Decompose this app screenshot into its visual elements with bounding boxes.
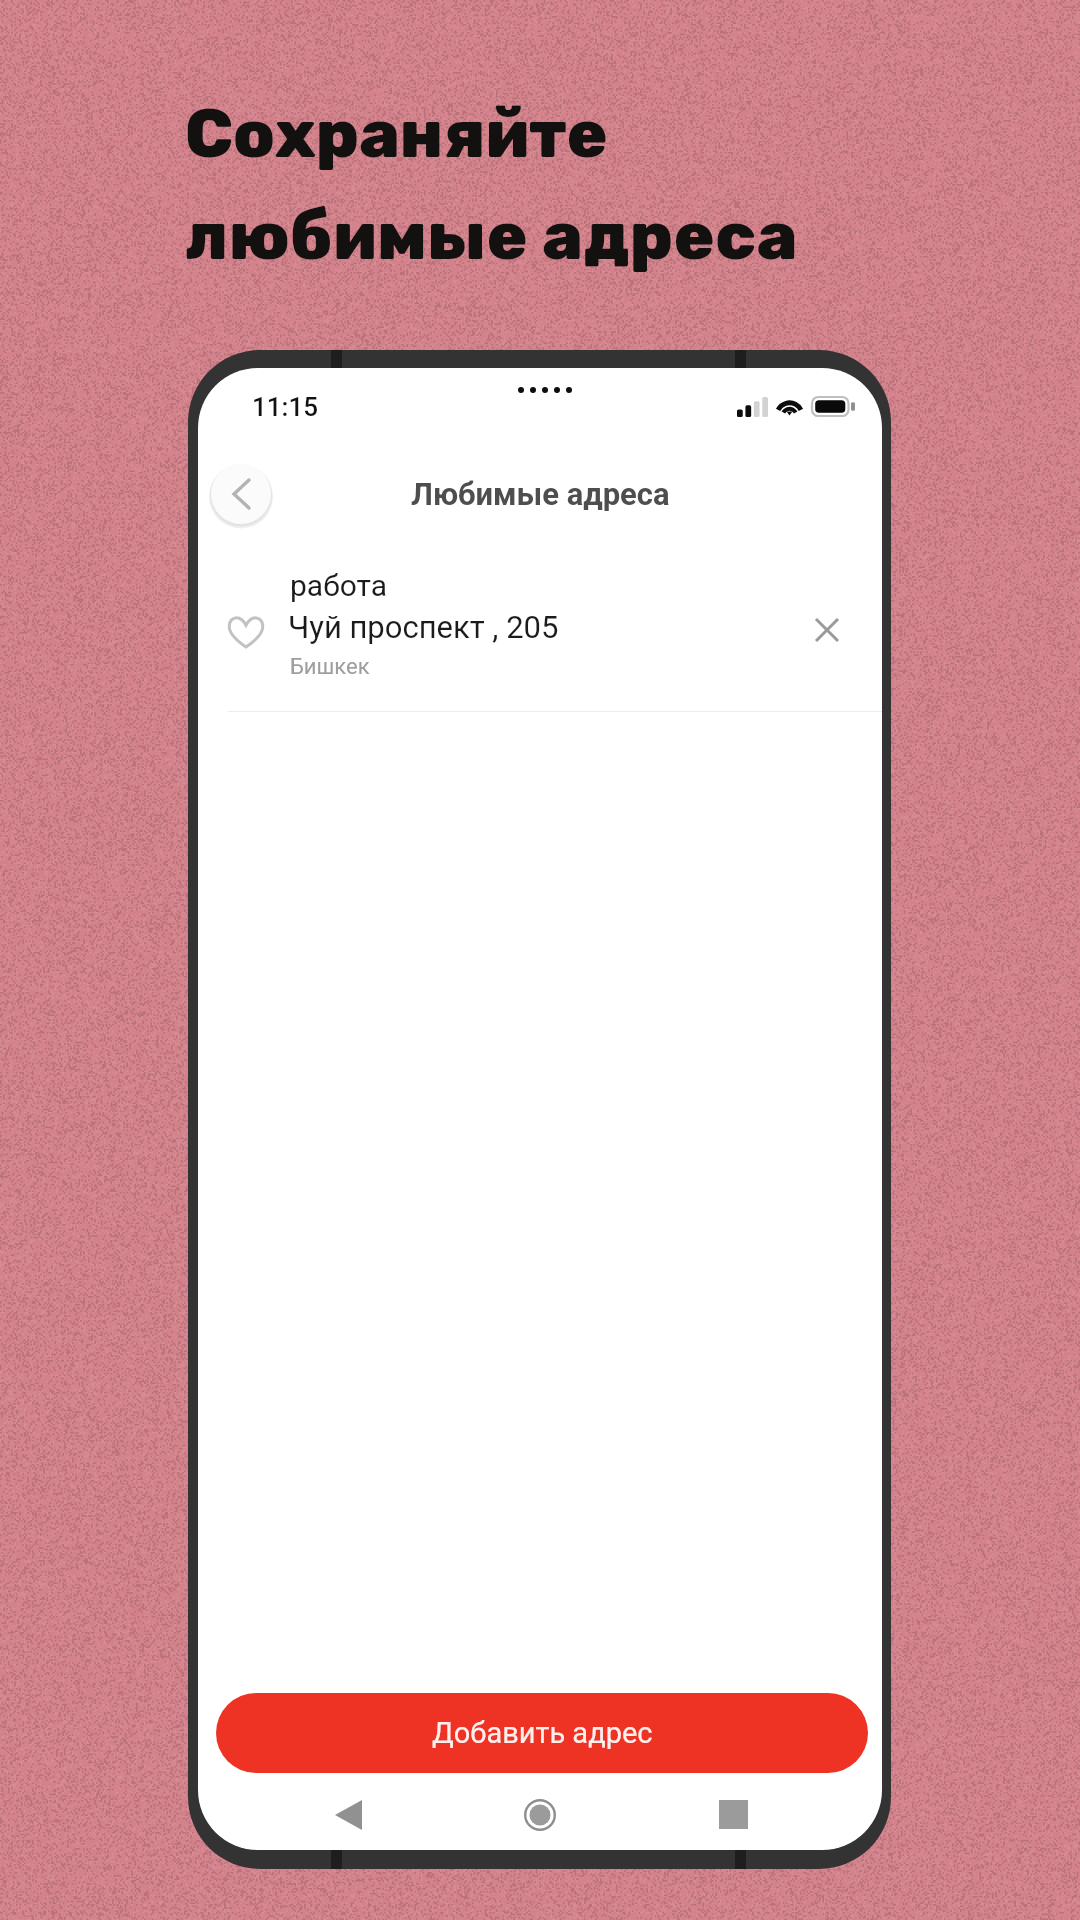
staticText: Чуй проспект , 205 [288,609,559,645]
button[interactable]: Home [524,1799,556,1831]
staticText: 11:15 [252,392,318,422]
staticText: Сохраняйте [185,94,608,173]
button[interactable]: Back [209,462,273,526]
button[interactable]: Back [335,1800,362,1830]
staticText: Добавить адрес [432,1716,653,1750]
button[interactable]: работа [198,556,882,712]
staticText: любимые адреса [185,196,798,275]
staticText: Бишкек [290,654,370,680]
button[interactable]: Remove address [803,606,851,654]
staticText: Любимые адреса [411,476,670,512]
staticText: работа [290,568,388,603]
button[interactable]: Добавить адрес [216,1693,868,1773]
